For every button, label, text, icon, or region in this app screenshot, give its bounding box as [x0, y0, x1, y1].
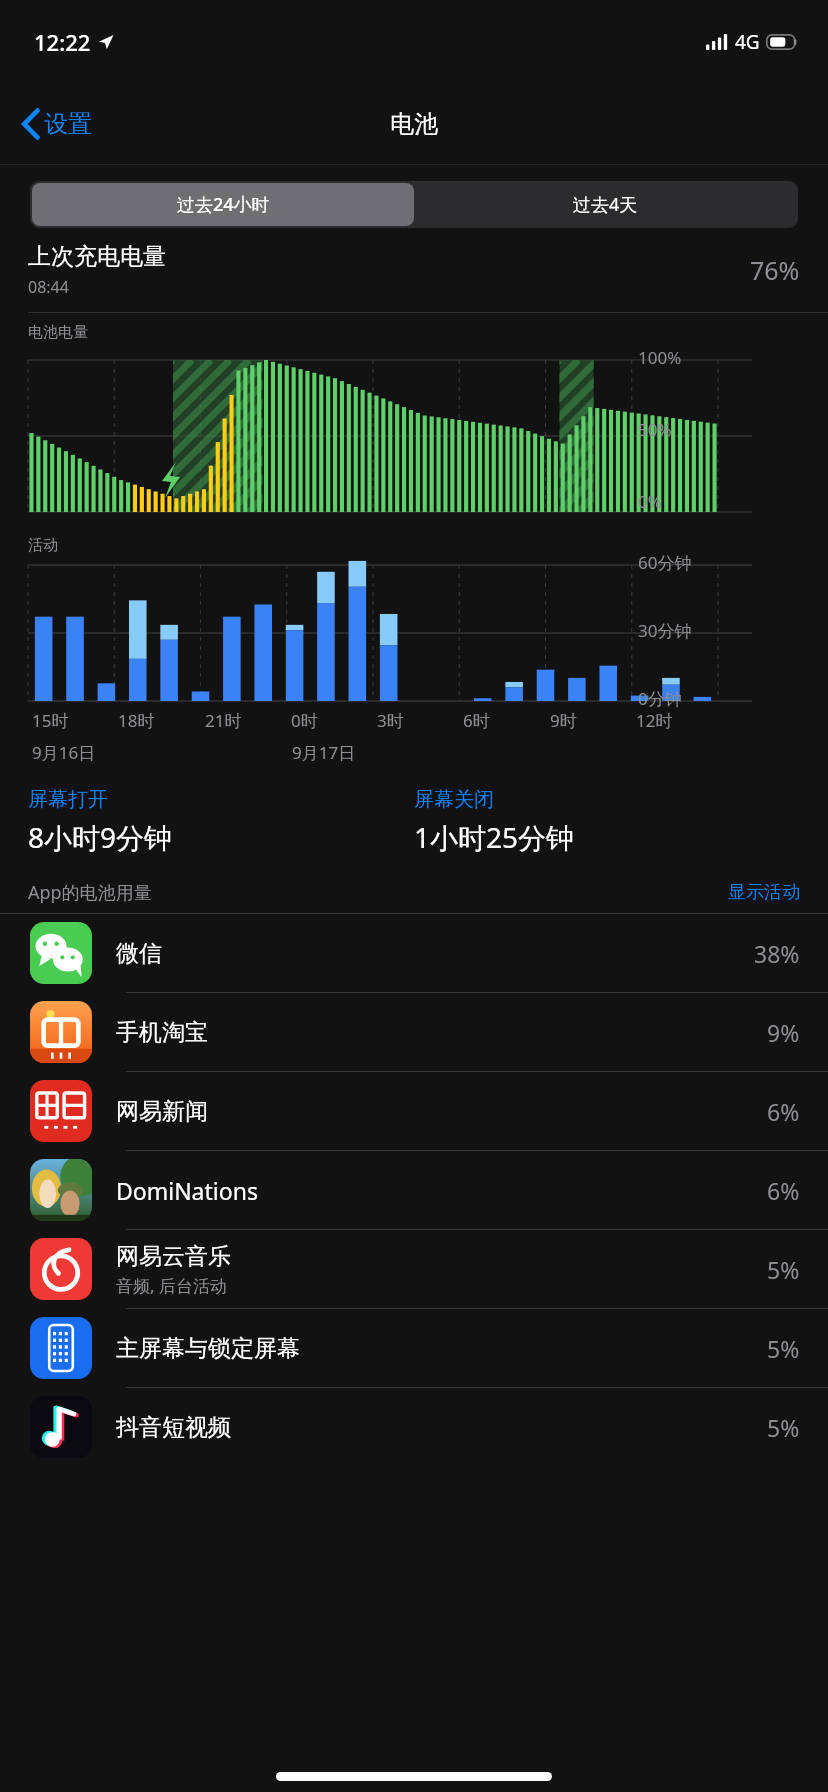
button[interactable]: 抖音短视频	[0, 1388, 828, 1466]
button[interactable]: 微信	[0, 914, 828, 992]
staticText: 电池电量	[28, 323, 88, 342]
staticText: DomiNations	[116, 1175, 258, 1206]
staticText: 38%	[754, 938, 800, 969]
staticText: 4G	[735, 29, 760, 55]
staticText: 主屏幕与锁定屏幕	[116, 1334, 300, 1363]
staticText: 12时	[636, 709, 673, 732]
button[interactable]: 网易新闻	[0, 1072, 828, 1150]
staticText: 21时	[205, 709, 242, 732]
staticText: 9%	[767, 1017, 800, 1048]
staticText: 活动	[28, 536, 58, 555]
staticText: 6%	[767, 1175, 800, 1206]
staticText: 5%	[767, 1333, 800, 1364]
staticText: 100%	[638, 346, 682, 369]
staticText: 0时	[291, 709, 318, 732]
staticText: 网易云音乐	[116, 1242, 231, 1271]
staticText: 屏幕关闭	[414, 787, 494, 812]
button[interactable]: 过去4天	[414, 183, 796, 226]
staticText: 9时	[550, 709, 577, 732]
staticText: 3时	[377, 709, 404, 732]
staticText: 显示活动	[728, 881, 800, 904]
staticText: 60分钟	[638, 551, 692, 574]
staticText: 设置	[44, 109, 92, 139]
staticText: 9月16日	[32, 741, 96, 764]
button[interactable]: 显示活动	[728, 881, 800, 904]
staticText: 12:22	[34, 27, 91, 57]
staticText: 屏幕打开	[28, 787, 108, 812]
staticText: 15时	[32, 709, 69, 732]
staticText: 电池	[390, 109, 438, 139]
staticText: 5%	[767, 1412, 800, 1443]
button[interactable]: 手机淘宝	[0, 993, 828, 1071]
staticText: 9月17日	[292, 741, 356, 764]
staticText: 6%	[767, 1096, 800, 1127]
staticText: 微信	[116, 939, 162, 968]
staticText: 18时	[118, 709, 155, 732]
staticText: 1小时25分钟	[414, 818, 575, 856]
staticText: 0%	[638, 490, 662, 513]
button[interactable]: 网易云音乐	[0, 1230, 828, 1308]
staticText: 上次充电电量	[28, 242, 166, 271]
staticText: 5%	[767, 1254, 800, 1285]
button[interactable]: 上次充电电量	[0, 242, 828, 298]
staticText: 50%	[638, 418, 672, 441]
button[interactable]: DomiNations	[0, 1151, 828, 1229]
staticText: 08:44	[28, 276, 69, 298]
staticText: 30分钟	[638, 619, 692, 642]
staticText: 6时	[463, 709, 490, 732]
staticText: 8小时9分钟	[28, 818, 173, 856]
staticText: 过去24小时	[177, 192, 270, 217]
staticText: App的电池用量	[28, 880, 728, 905]
button[interactable]: 主屏幕与锁定屏幕	[0, 1309, 828, 1387]
staticText: 网易新闻	[116, 1097, 208, 1126]
staticText: 音频, 后台活动	[116, 1274, 227, 1297]
staticText: 76%	[750, 253, 800, 287]
staticText: 0分钟	[638, 687, 682, 710]
button[interactable]: 设置	[16, 100, 98, 148]
button[interactable]: 过去24小时	[32, 183, 414, 226]
staticText: 手机淘宝	[116, 1018, 208, 1047]
staticText: 过去4天	[573, 192, 638, 217]
staticText: 抖音短视频	[116, 1413, 231, 1442]
